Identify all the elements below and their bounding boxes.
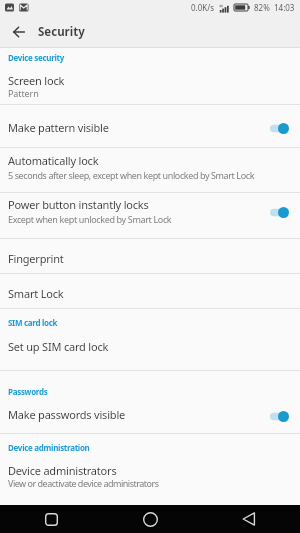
staticText: Make passwords visible <box>8 407 126 422</box>
button[interactable] <box>0 455 300 505</box>
staticText: Pattern <box>8 87 39 99</box>
button[interactable] <box>0 192 300 238</box>
staticText: Security <box>38 24 85 40</box>
button[interactable] <box>9 22 29 42</box>
staticText: Device administration <box>8 442 90 453</box>
staticText: Except when kept unlocked by Smart Lock <box>8 213 172 225</box>
staticText: Fingerprint <box>8 251 64 266</box>
button[interactable] <box>0 273 300 308</box>
button[interactable] <box>234 505 264 533</box>
button[interactable] <box>36 505 66 533</box>
staticText: Passwords <box>8 386 48 397</box>
staticText: Power button instantly locks <box>8 197 149 212</box>
staticText: Make pattern visible <box>8 120 109 135</box>
button[interactable] <box>0 66 300 105</box>
staticText: Set up SIM card lock <box>8 339 109 354</box>
button[interactable] <box>0 326 300 370</box>
staticText: 14:03 <box>274 2 295 13</box>
staticText: View or deactivate device administrators <box>8 477 159 489</box>
staticText: Screen lock <box>8 73 65 88</box>
staticText: Automatically lock <box>8 153 99 168</box>
staticText: 5 seconds after sleep, except when kept … <box>8 169 255 181</box>
button[interactable] <box>0 396 300 433</box>
staticText: Device security <box>8 52 65 63</box>
staticText: SIM card lock <box>8 317 58 328</box>
staticText: 0.0K/s <box>191 2 215 13</box>
staticText: Device administrators <box>8 463 117 478</box>
button[interactable] <box>0 238 300 273</box>
staticText: 82% <box>254 2 270 13</box>
button[interactable] <box>0 105 300 147</box>
button[interactable] <box>0 147 300 192</box>
button[interactable] <box>135 505 165 533</box>
staticText: Smart Lock <box>8 286 64 301</box>
